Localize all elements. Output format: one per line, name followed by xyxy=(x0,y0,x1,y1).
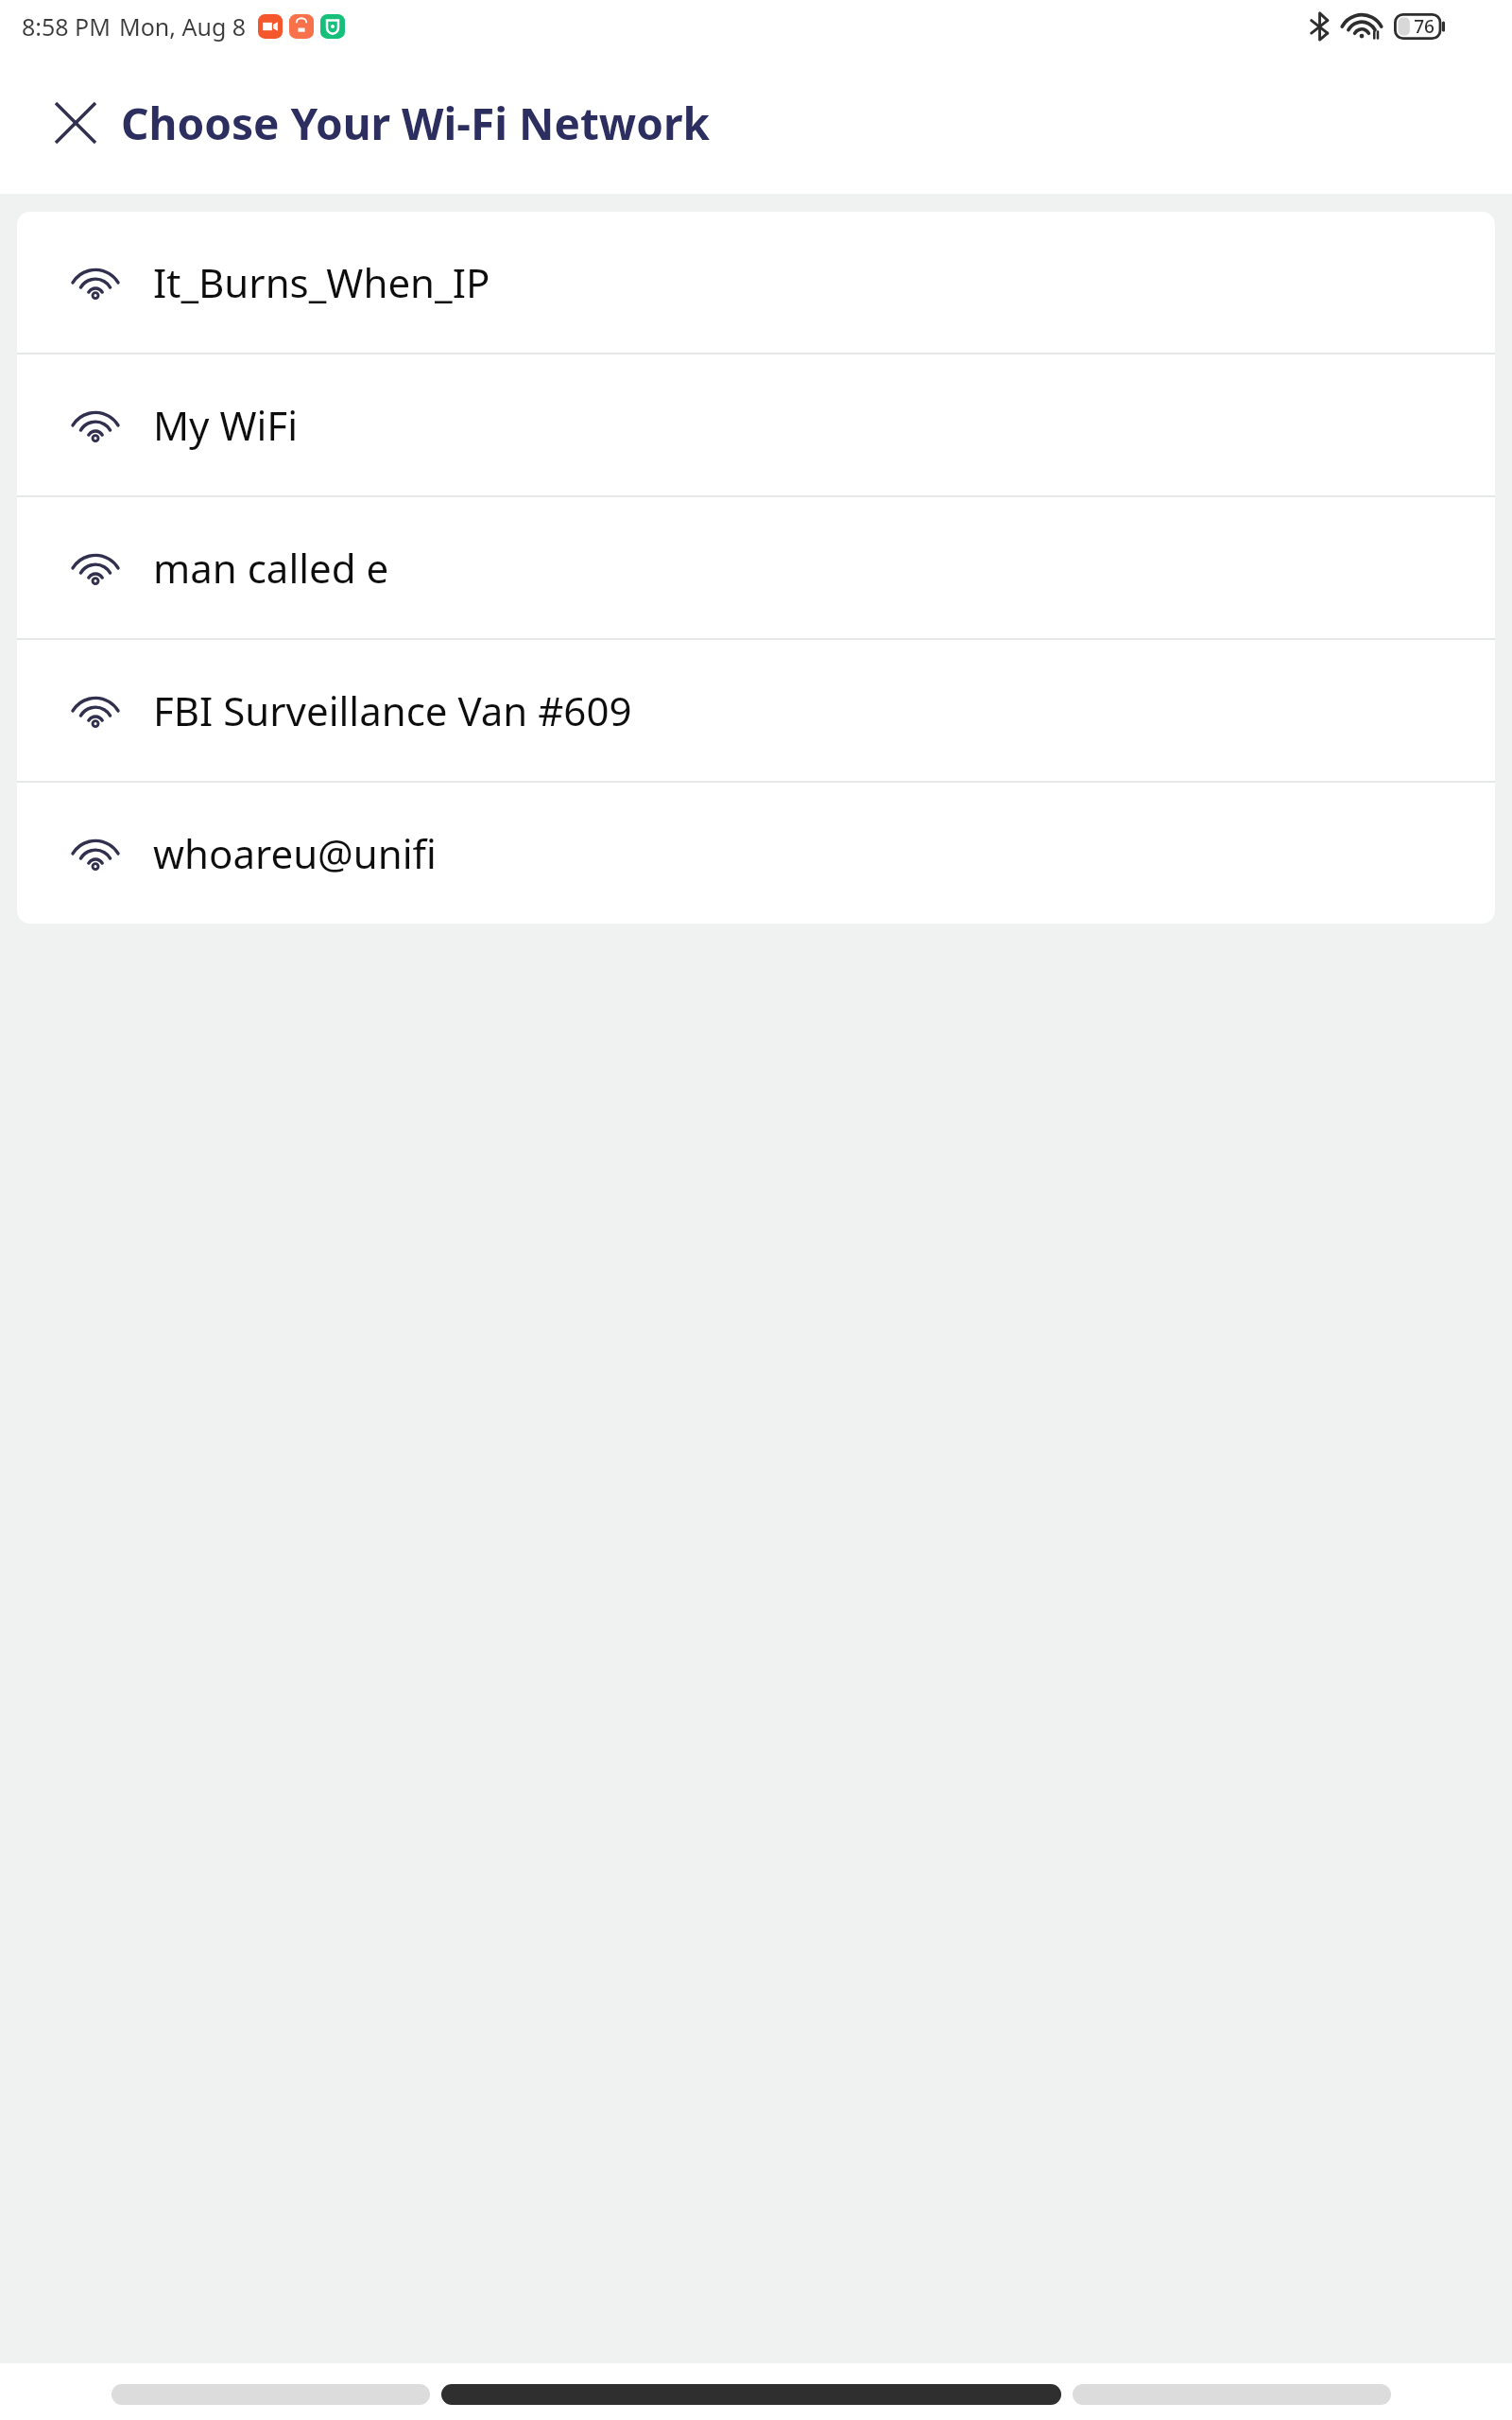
button[interactable]: whoareu@unifi xyxy=(17,783,1495,924)
staticText: man called e xyxy=(153,541,389,595)
button[interactable]: It_Burns_When_IP xyxy=(17,212,1495,353)
button[interactable]: Back xyxy=(112,2384,430,2405)
staticText: Choose Your Wi-Fi Network xyxy=(121,94,711,153)
button[interactable]: Home xyxy=(441,2384,1061,2405)
button[interactable]: man called e xyxy=(17,497,1495,638)
staticText: It_Burns_When_IP xyxy=(153,255,490,309)
staticText: whoareu@unifi xyxy=(153,826,437,880)
button[interactable]: Close xyxy=(32,79,119,166)
button[interactable]: My WiFi xyxy=(17,354,1495,495)
staticText: 8:58 PM xyxy=(22,10,111,43)
staticText: 76 xyxy=(1403,14,1445,39)
staticText: My WiFi xyxy=(153,398,298,452)
button[interactable]: Recents xyxy=(1073,2384,1391,2405)
button[interactable]: FBI Surveillance Van #609 xyxy=(17,640,1495,781)
staticText: Mon, Aug 8 xyxy=(119,10,247,43)
staticText: FBI Surveillance Van #609 xyxy=(153,683,632,737)
